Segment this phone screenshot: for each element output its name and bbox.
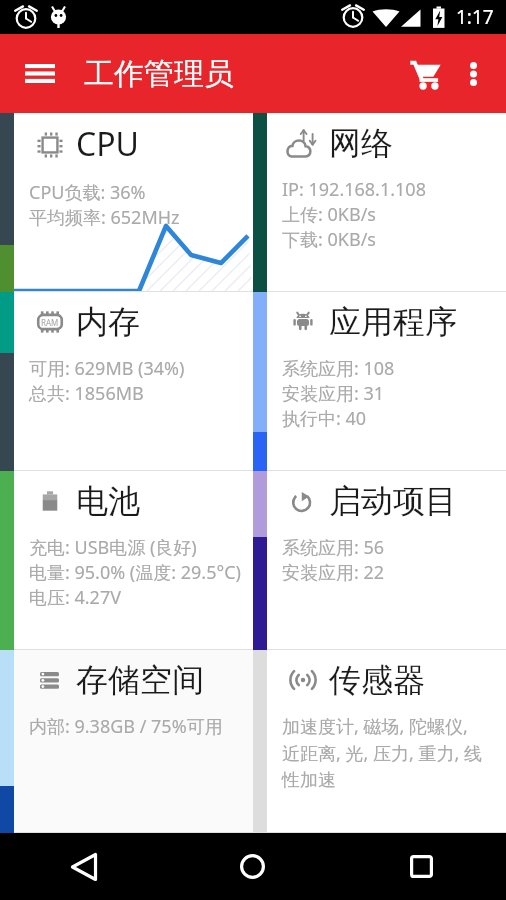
button[interactable]: 存储空间 [0, 650, 253, 833]
button[interactable]: Home [168, 833, 337, 900]
staticText: 网络 [329, 123, 393, 163]
button[interactable]: 电池 [0, 471, 253, 650]
staticText: 安装应用: 31 [282, 381, 385, 406]
button[interactable]: Recent apps [337, 833, 506, 900]
staticText: 安装应用: 22 [282, 560, 385, 585]
staticText: RAM [41, 317, 59, 328]
button[interactable]: 网络 [253, 113, 506, 292]
staticText: 上传: 0KB/s [282, 202, 376, 227]
staticText: 执行中: 40 [282, 406, 367, 431]
staticText: 启动项目 [329, 481, 457, 521]
staticText: IP: 192.168.1.108 [282, 177, 426, 202]
button[interactable]: 启动项目 [253, 471, 506, 650]
staticText: 系统应用: 108 [282, 356, 395, 381]
button[interactable]: CPU [0, 113, 253, 292]
staticText: 内存 [76, 302, 140, 342]
button[interactable]: Shop [386, 34, 441, 113]
staticText: 传感器 [329, 660, 425, 700]
staticText: 应用程序 [329, 302, 457, 342]
button[interactable]: 应用程序 [253, 292, 506, 471]
staticText: 可用: 629MB (34%) [29, 356, 185, 381]
staticText: 存储空间 [76, 660, 204, 700]
button[interactable]: More options [441, 34, 505, 113]
staticText: CPU负载: 36% [29, 180, 146, 205]
staticText: 总共: 1856MB [29, 381, 144, 406]
staticText: 充电: USB电源 (良好) [29, 535, 197, 560]
staticText: 电池 [76, 481, 140, 521]
staticText: 内部: 9.38GB / 75%可用 [29, 714, 223, 739]
staticText: CPU [76, 122, 139, 166]
button[interactable]: Open navigation drawer [0, 34, 79, 113]
staticText: 1:17 [456, 4, 494, 30]
staticText: 平均频率: 652MHz [29, 205, 180, 230]
button[interactable]: 传感器 [253, 650, 506, 833]
staticText: 电量: 95.0% (温度: 29.5°C) [29, 560, 241, 585]
staticText: 下载: 0KB/s [282, 227, 376, 252]
staticText: 工作管理员 [84, 55, 234, 93]
staticText: 系统应用: 56 [282, 535, 385, 560]
button[interactable]: RAM [0, 292, 253, 471]
button[interactable]: Back [0, 833, 168, 900]
staticText: 加速度计, 磁场, 陀螺仪, 近距离, 光, 压力, 重力, 线性加速 [282, 714, 490, 792]
staticText: 电压: 4.27V [29, 585, 122, 610]
